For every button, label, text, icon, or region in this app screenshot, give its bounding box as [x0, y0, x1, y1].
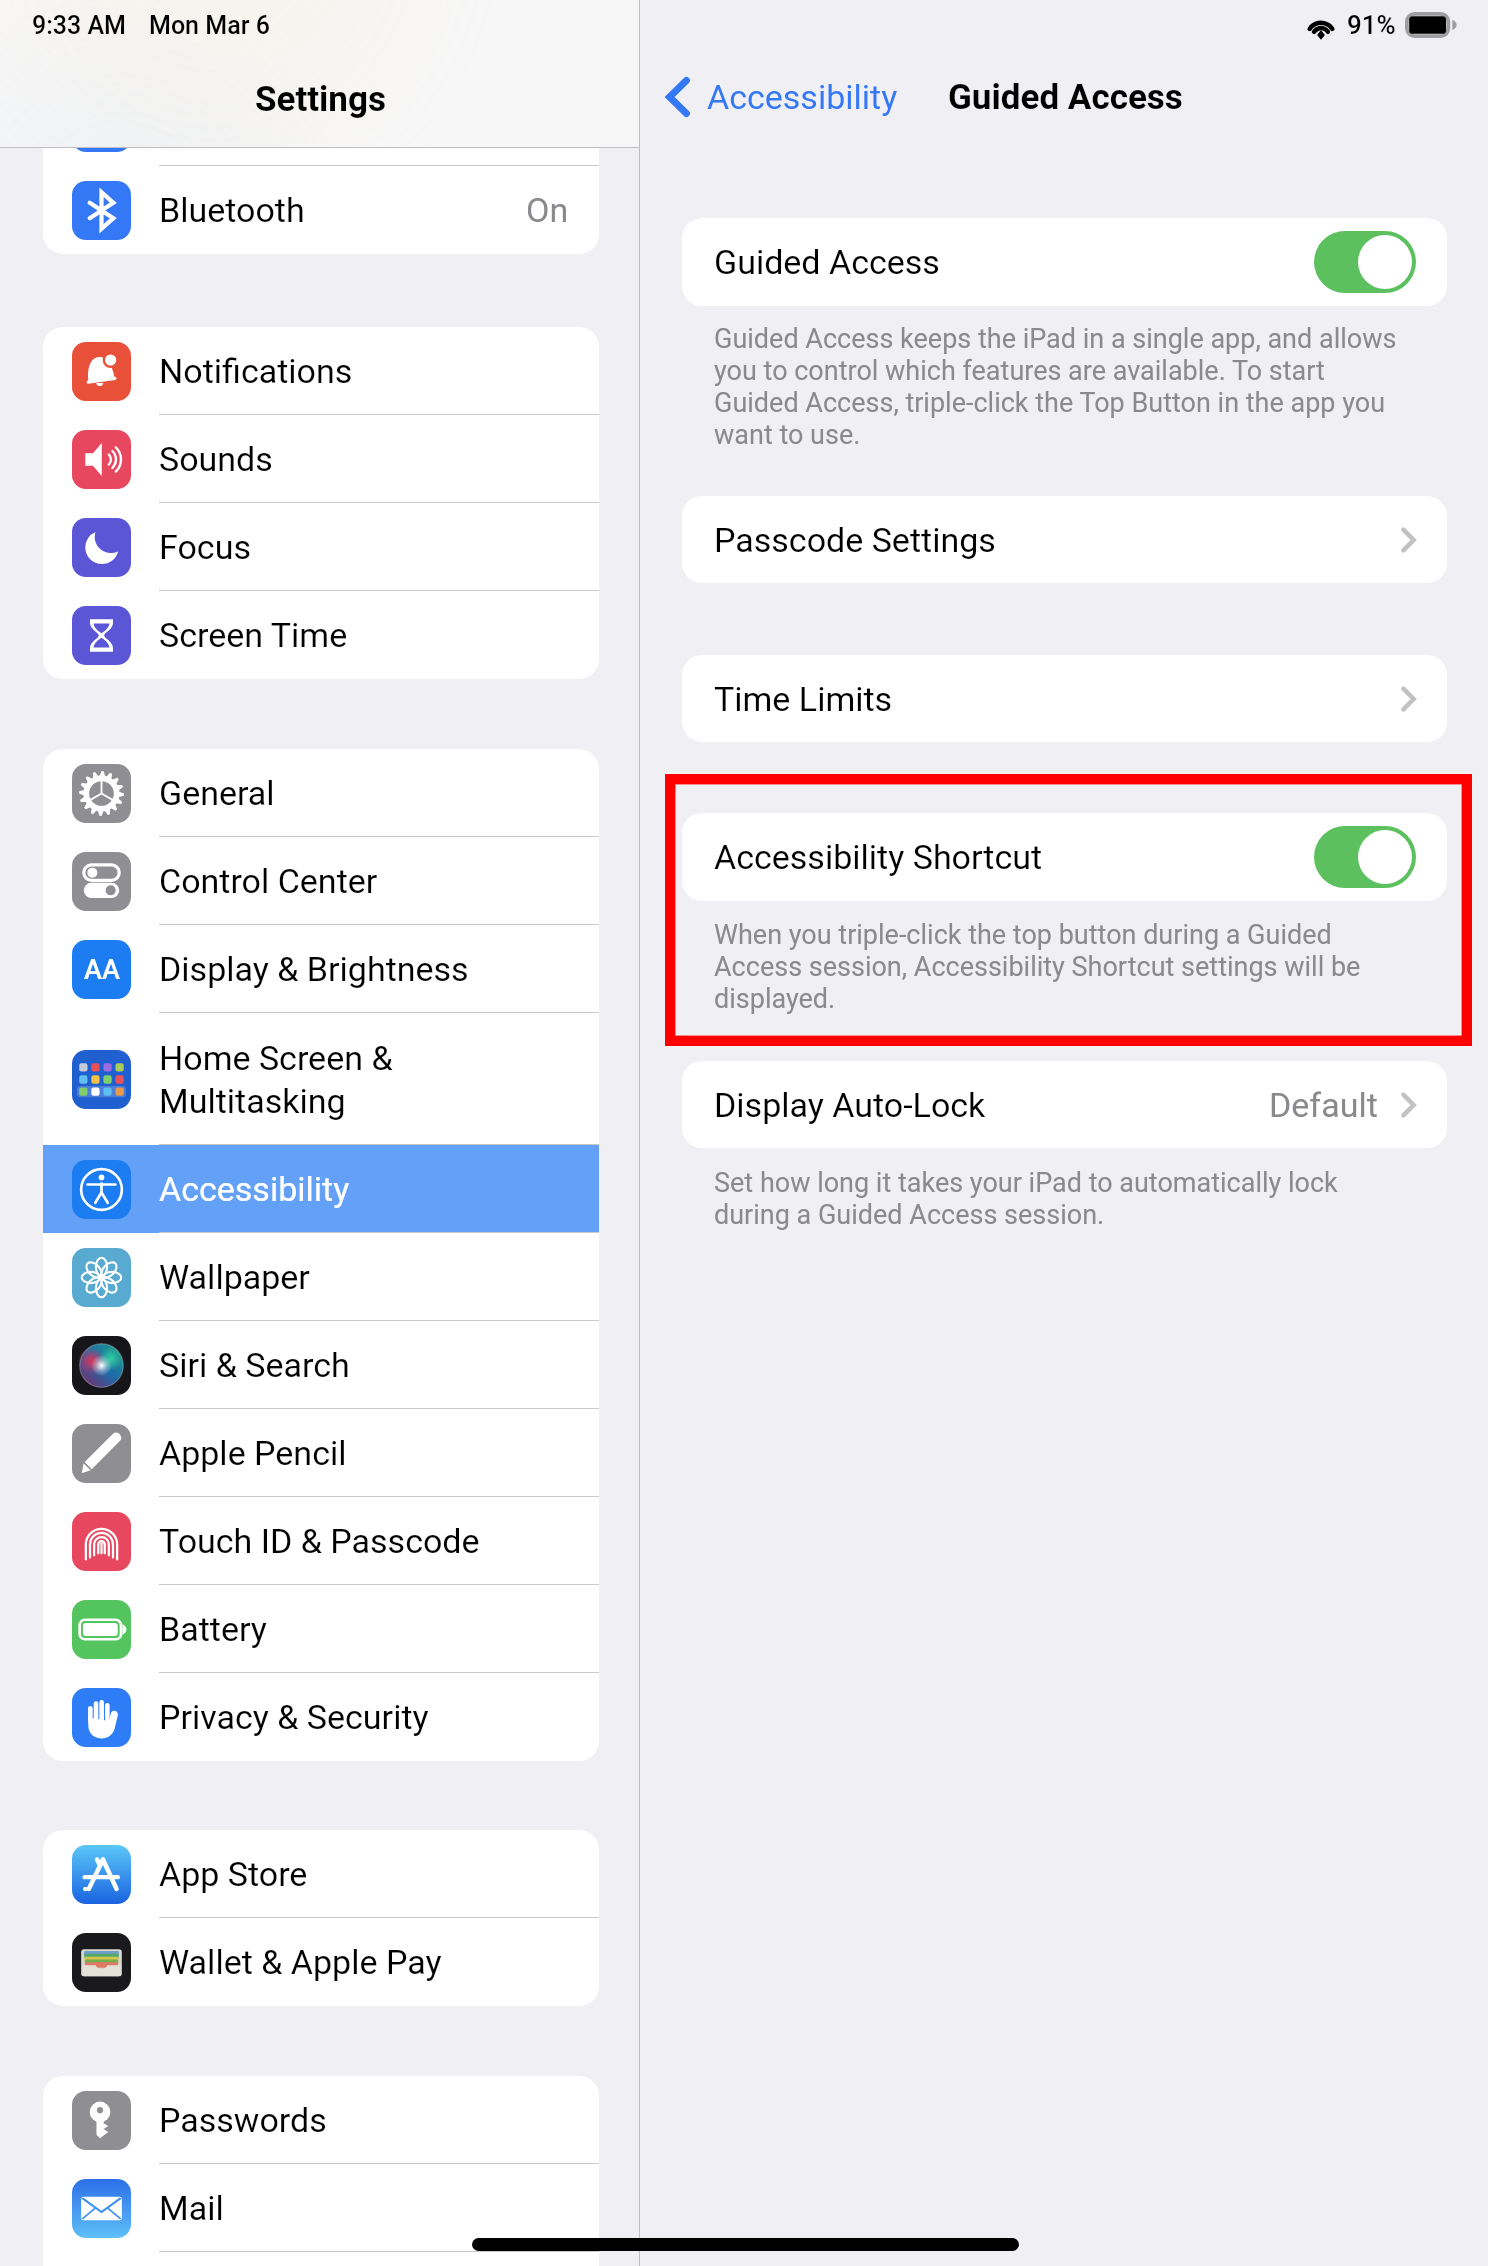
button[interactable]: Notifications — [43, 327, 599, 415]
button[interactable]: Passwords — [43, 2076, 599, 2164]
staticText: Accessibility Shortcut — [714, 837, 1314, 877]
button[interactable]: Time Limits — [682, 655, 1447, 742]
button[interactable]: Privacy & Security — [43, 1673, 599, 1761]
button[interactable]: Wallet & Apple Pay — [43, 1918, 599, 2006]
button[interactable]: Wallpaper — [43, 1233, 599, 1321]
staticText: 91% — [1347, 10, 1396, 40]
staticText: Screen Time — [159, 615, 569, 655]
button[interactable]: App Store — [43, 1830, 599, 1918]
button[interactable]: Touch ID & Passcode — [43, 1497, 599, 1585]
button[interactable]: Focus — [43, 503, 599, 591]
staticText: Control Center — [159, 861, 569, 901]
button[interactable]: AA — [43, 925, 599, 1013]
button[interactable]: Accessibility Shortcut — [682, 813, 1447, 901]
staticText: General — [159, 773, 569, 813]
button[interactable]: Passcode Settings — [682, 496, 1447, 583]
staticText: Time Limits — [714, 679, 1401, 719]
staticText: Siri & Search — [159, 1345, 569, 1385]
staticText: Bluetooth — [159, 190, 526, 230]
staticText: Settings — [255, 79, 386, 120]
staticText: Touch ID & Passcode — [159, 1521, 569, 1561]
staticText: Default — [1269, 1085, 1378, 1125]
button[interactable]: Battery — [43, 1585, 599, 1673]
staticText: Guided Access — [714, 242, 1314, 282]
button[interactable]: Apple Pencil — [43, 1409, 599, 1497]
staticText: AA — [84, 954, 120, 986]
button[interactable]: Wi-Fi — [43, 78, 599, 166]
button[interactable]: Display Auto-Lock — [682, 1061, 1447, 1148]
staticText: Focus — [159, 527, 569, 567]
staticText: 9:33 AM — [32, 11, 127, 40]
button[interactable]: Mail — [43, 2164, 599, 2252]
button[interactable]: Screen Time — [43, 591, 599, 679]
staticText: Accessibility — [159, 1169, 569, 1209]
staticText: Guided Access — [948, 77, 1183, 118]
staticText: Wallpaper — [159, 1257, 569, 1297]
staticText: Passcode Settings — [714, 520, 1401, 560]
staticText: Apple Pencil — [159, 1433, 569, 1473]
staticText: Notifications — [159, 351, 569, 391]
staticText: Mail — [159, 2188, 569, 2228]
button[interactable]: General — [43, 749, 599, 837]
button[interactable]: Siri & Search — [43, 1321, 599, 1409]
staticText: Sounds — [159, 439, 569, 479]
staticText: Privacy & Security — [159, 1697, 569, 1737]
staticText: Home Screen & Multitasking — [159, 1038, 569, 1121]
staticText: Display & Brightness — [159, 949, 569, 989]
button[interactable]: Control Center — [43, 837, 599, 925]
staticText: On — [526, 190, 569, 230]
staticText: Accessibility — [707, 77, 898, 117]
button[interactable]: Back to Accessibility — [666, 74, 902, 120]
button[interactable]: Guided Access — [682, 218, 1447, 306]
button[interactable]: Bluetooth — [43, 166, 599, 254]
staticText: Wallet & Apple Pay — [159, 1942, 569, 1982]
staticText: App Store — [159, 1854, 569, 1894]
button[interactable]: Home Screen & Multitasking — [43, 1013, 599, 1145]
staticText: When you triple-click the top button dur… — [714, 919, 1403, 1015]
button[interactable]: Accessibility — [43, 1145, 599, 1233]
staticText: Guided Access keeps the iPad in a single… — [714, 323, 1403, 451]
staticText: Mon Mar 6 — [149, 11, 270, 40]
staticText: Wi-Fi — [159, 102, 477, 142]
staticText: Passwords — [159, 2100, 569, 2140]
staticText: Battery — [159, 1609, 569, 1649]
staticText: Set how long it takes your iPad to autom… — [714, 1167, 1403, 1231]
staticText: Display Auto-Lock — [714, 1085, 1269, 1125]
button[interactable]: Sounds — [43, 415, 599, 503]
